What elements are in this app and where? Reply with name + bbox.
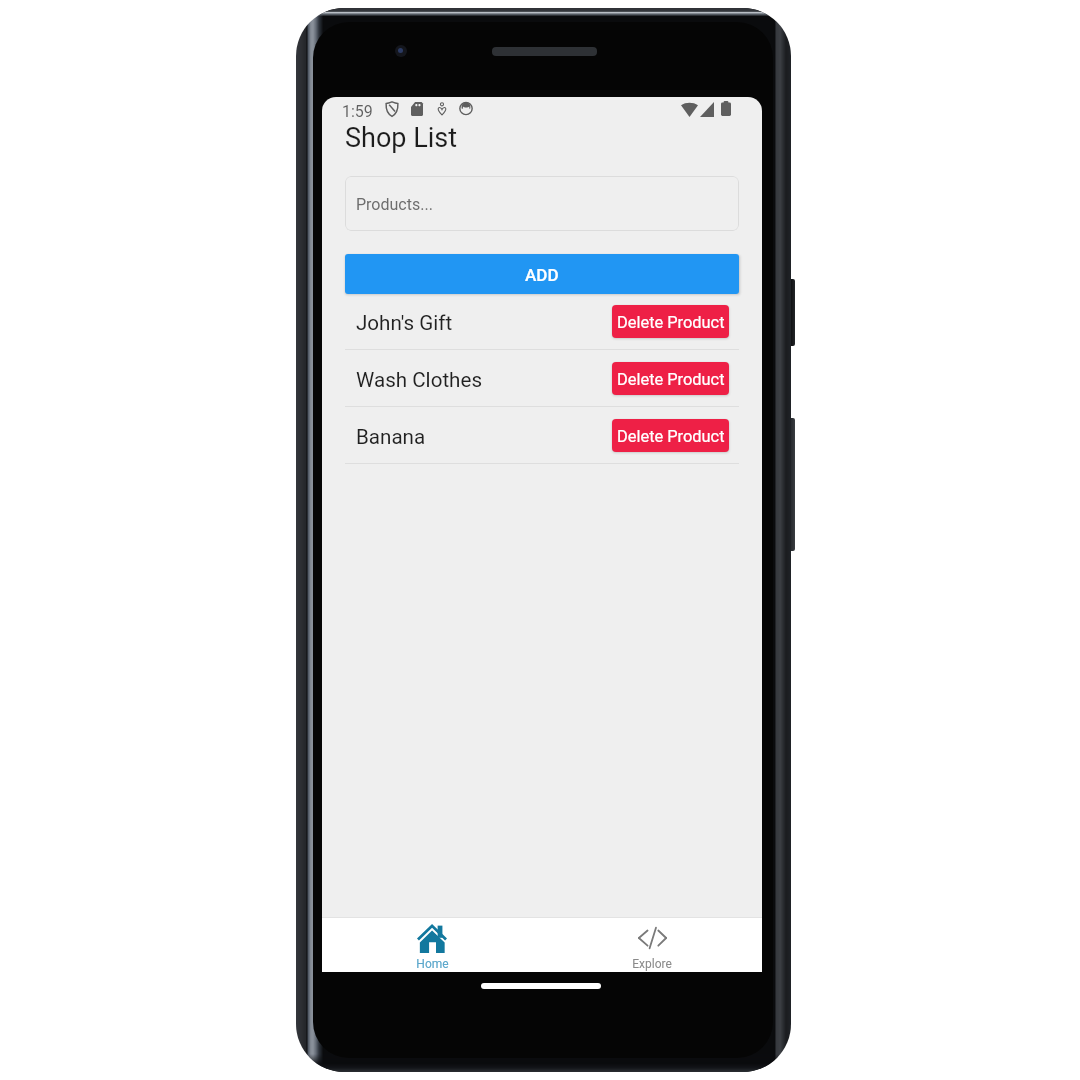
staticText: Explore [632,957,672,971]
button[interactable]: Delete Product [612,305,729,338]
button[interactable]: ADD [345,254,739,294]
staticText: 1:59 [342,102,373,121]
other: Explore [638,927,667,949]
staticText: Delete Product [617,370,725,389]
staticText: ADD [525,265,559,285]
staticText: Banana [356,425,426,449]
button[interactable]: Home [322,918,542,972]
button[interactable]: Explore [542,918,762,972]
staticText: Delete Product [617,427,725,446]
staticText: John's Gift [356,311,453,335]
staticText: Delete Product [617,313,725,332]
other: Home [417,924,447,953]
staticText: Products... [356,195,433,214]
button[interactable]: Delete Product [612,419,729,452]
button[interactable]: Delete Product [612,362,729,395]
staticText: Home [416,957,449,971]
staticText: Wash Clothes [356,368,483,392]
staticText: Shop List [345,122,458,154]
button[interactable]: Products... [345,176,739,231]
